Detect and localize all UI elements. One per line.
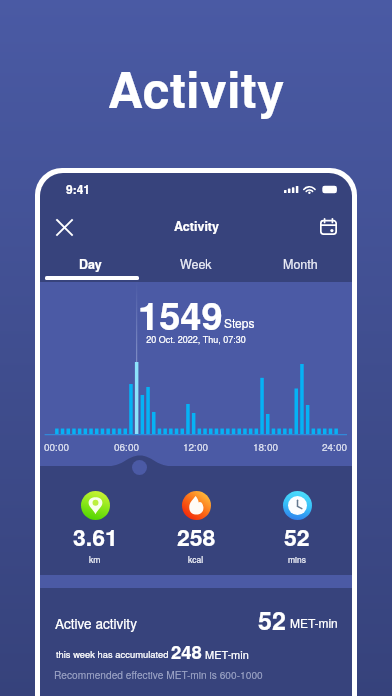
staticText: MET-min [290, 614, 338, 631]
staticText: MET-min [205, 646, 249, 662]
button[interactable]: Calendar [312, 210, 344, 242]
staticText: kcal [188, 553, 204, 565]
staticText: 3.61 [73, 520, 118, 553]
button[interactable]: 3.61 [49, 466, 141, 575]
staticText: 00:00 [44, 440, 70, 454]
button[interactable]: Scrubber handle [132, 460, 147, 475]
button[interactable]: Close [48, 211, 80, 243]
staticText: 248 [171, 638, 202, 664]
staticText: this week has accumulated [56, 647, 169, 660]
staticText: Active activity [55, 613, 137, 632]
staticText: km [89, 553, 101, 565]
staticText: 12:00 [183, 440, 209, 454]
button[interactable]: 52 [251, 466, 343, 575]
button[interactable]: Day [40, 247, 144, 282]
staticText: 9:41 [66, 180, 91, 197]
staticText: 24:00 [322, 440, 348, 454]
staticText: 258 [177, 520, 216, 553]
staticText: 52 [258, 602, 286, 638]
staticText: 06:00 [114, 440, 140, 454]
staticText: Activity [0, 53, 392, 123]
staticText: Recommended effective MET-min is 600-100… [54, 667, 263, 682]
staticText: Activity [174, 217, 219, 235]
button[interactable]: Month [248, 247, 352, 282]
staticText: Week [180, 255, 212, 273]
staticText: 20 Oct. 2022, Thu, 07:30 [40, 333, 352, 346]
staticText: Steps [224, 314, 255, 331]
staticText: 18:00 [253, 440, 279, 454]
staticText: mins [288, 553, 306, 565]
button[interactable]: 258 [150, 466, 242, 575]
staticText: Month [283, 255, 318, 273]
button[interactable]: Week [144, 247, 248, 282]
staticText: 1549 [138, 287, 223, 341]
staticText: 52 [284, 520, 310, 553]
staticText: Day [79, 255, 102, 273]
